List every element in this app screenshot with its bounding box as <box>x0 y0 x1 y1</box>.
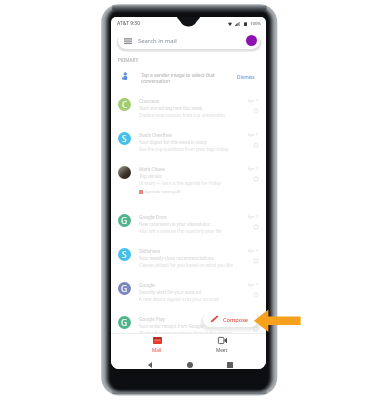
button[interactable]: Compose <box>203 312 258 327</box>
staticText: Explore new courses from top universitie… <box>139 112 226 118</box>
staticText: AT&T 9:30 <box>117 20 141 27</box>
button[interactable]: Dismiss <box>237 74 255 81</box>
staticText: Trip details <box>139 173 162 179</box>
button[interactable]: G <box>111 208 266 242</box>
staticText: Mark Chase <box>139 166 165 172</box>
staticText: conversation <box>141 78 170 84</box>
staticText: Classes picked for you based on what you… <box>139 262 234 268</box>
button[interactable]: G <box>111 310 266 344</box>
staticText: Stack Overflow <box>139 132 172 138</box>
button[interactable]: C <box>111 92 266 126</box>
staticText: Compose <box>223 316 249 324</box>
staticText: G <box>121 283 128 294</box>
staticText: Apr 7 <box>248 248 258 253</box>
button[interactable]: Home <box>183 358 197 369</box>
staticText: Skillshare <box>139 248 161 254</box>
staticText: Start something new this week <box>139 105 203 111</box>
staticText: Google <box>139 282 155 288</box>
staticText: Hi team — here is the agenda for Friday <box>139 180 222 186</box>
button[interactable]: Meet <box>206 334 238 353</box>
staticText: New comment on your shared doc <box>139 221 211 227</box>
staticText: S <box>122 249 127 260</box>
button[interactable]: S <box>111 126 266 160</box>
staticText: Apr 7 <box>248 166 258 171</box>
staticText: Tap a sender image to select that <box>141 72 215 78</box>
staticText: 100% <box>250 20 262 26</box>
staticText: Your digest for this week is ready <box>139 139 208 145</box>
staticText: PRIMARY <box>118 57 139 63</box>
staticText: Apr 7 <box>248 98 258 103</box>
staticText: Apr 7 <box>248 282 258 287</box>
staticText: Apr 7 <box>248 214 258 219</box>
staticText: G <box>121 215 128 226</box>
staticText: C <box>122 99 128 110</box>
button[interactable]: Mark Chase <box>111 160 266 208</box>
staticText: Mail <box>152 347 162 353</box>
staticText: Apr 7 <box>248 132 258 137</box>
staticText: Google Play <box>139 316 165 322</box>
staticText: See the top questions from your tags tod… <box>139 146 229 152</box>
staticText: Google Docs <box>139 214 167 220</box>
staticText: G <box>121 317 128 328</box>
staticText: Thanks for your purchase. Here is the re… <box>139 330 232 336</box>
staticText: Alex left a note on the quarterly plan f… <box>139 228 222 234</box>
staticText: Security alert for your account <box>139 289 202 295</box>
staticText: Your weekly class recommendations <box>139 255 214 261</box>
button[interactable]: Account <box>246 35 257 46</box>
staticText: Agenda notes.pdf <box>145 189 180 195</box>
button[interactable]: Tap a sender image to select that <box>111 66 266 89</box>
button[interactable]: Recent apps <box>223 358 237 369</box>
staticText: Apr 7 <box>248 316 258 321</box>
button[interactable]: Mail <box>141 334 173 353</box>
staticText: Meet <box>216 347 228 353</box>
button[interactable]: Search in mail <box>118 32 260 49</box>
button[interactable]: Back <box>143 358 157 369</box>
staticText: Your order receipt from Google <box>139 323 204 329</box>
button[interactable]: G <box>111 276 266 310</box>
button[interactable]: S <box>111 242 266 276</box>
staticText: S <box>122 133 127 144</box>
staticText: Search in mail <box>138 37 177 45</box>
staticText: Coursera <box>139 98 159 104</box>
staticText: A new device signed in to your account <box>139 296 220 302</box>
